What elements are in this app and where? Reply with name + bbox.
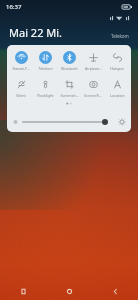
button[interactable]: Recents <box>0 282 46 300</box>
staticText: Mai 22 Mi. <box>9 25 63 40</box>
button[interactable]: Brightness <box>12 117 126 127</box>
staticText: Telekom <box>111 33 129 39</box>
button[interactable]: Bluetooth <box>57 50 81 72</box>
staticText: Location <box>110 93 125 98</box>
button[interactable]: Xiaomi-F… <box>9 50 33 72</box>
button[interactable]: Telekom <box>33 50 57 72</box>
staticText: Silent <box>16 93 26 98</box>
button[interactable]: Silent <box>9 77 33 99</box>
staticText: Screensh… <box>60 93 79 98</box>
staticText: Xiaomi-F… <box>12 66 30 71</box>
staticText: Hotspot <box>110 66 124 71</box>
button[interactable]: Home <box>46 282 92 300</box>
button[interactable]: Flashlight <box>33 77 57 99</box>
button[interactable]: Location <box>105 77 129 99</box>
button[interactable]: Airplane… <box>81 50 105 72</box>
staticText: Flashlight <box>37 93 54 98</box>
staticText: Telekom <box>38 66 53 71</box>
button[interactable]: Screen R… <box>81 77 105 99</box>
button[interactable]: Back <box>92 282 138 300</box>
staticText: Bluetooth <box>61 66 78 71</box>
button[interactable]: Hotspot <box>105 50 129 72</box>
button[interactable]: Brightness settings <box>118 118 126 126</box>
staticText: Screen R… <box>84 93 102 98</box>
staticText: 16:37 <box>6 3 22 11</box>
button[interactable]: Screensh… <box>57 77 81 99</box>
staticText: Airplane… <box>85 66 102 71</box>
